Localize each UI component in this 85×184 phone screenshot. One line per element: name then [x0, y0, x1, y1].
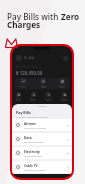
button[interactable]: Airtime: [12, 119, 72, 131]
staticText: Cards: [45, 98, 52, 102]
staticText: Electricity: [24, 150, 40, 154]
button[interactable]: Data: [29, 92, 37, 102]
staticText: Renew subscription: [24, 168, 46, 171]
staticText: More: [61, 98, 68, 102]
staticText: Airtime: [24, 122, 36, 126]
button[interactable]: More: [60, 92, 69, 102]
staticText: Data: [30, 98, 36, 102]
staticText: Hi, Ada: [24, 56, 35, 60]
staticText: ₦ 120,450.00: [16, 70, 43, 76]
staticText: Scan: [59, 85, 65, 89]
button[interactable]: Bills: [15, 92, 22, 102]
button[interactable]: Cards: [44, 92, 53, 102]
button[interactable]: Data: [12, 133, 72, 145]
button[interactable]: Electricity: [12, 147, 72, 159]
staticText: Add: [41, 85, 46, 89]
staticText: Pay Bills: [16, 110, 31, 115]
button[interactable]: Profile: [16, 55, 22, 61]
staticText: Bills: [16, 98, 21, 102]
button[interactable]: Notifications: [63, 56, 68, 61]
staticText: Charges: [7, 19, 41, 30]
staticText: Buy data bundles: [24, 140, 44, 143]
staticText: Choose a service to continue: [16, 115, 49, 118]
staticText: Send: [19, 85, 26, 89]
staticText: Pay Bills with: [7, 11, 61, 22]
button[interactable]: Scan: [58, 78, 66, 89]
staticText: Zero: [61, 11, 80, 22]
staticText: Top up any network: [24, 126, 47, 129]
other: Logo: [5, 38, 18, 48]
staticText: Cable TV: [24, 164, 38, 168]
staticText: Pay power units: [24, 154, 42, 157]
button[interactable]: Cable TV: [12, 161, 72, 173]
staticText: Data: [24, 136, 32, 140]
button[interactable]: Send: [18, 78, 27, 89]
staticText: Available balance: [16, 65, 39, 69]
button[interactable]: Add: [39, 78, 47, 89]
